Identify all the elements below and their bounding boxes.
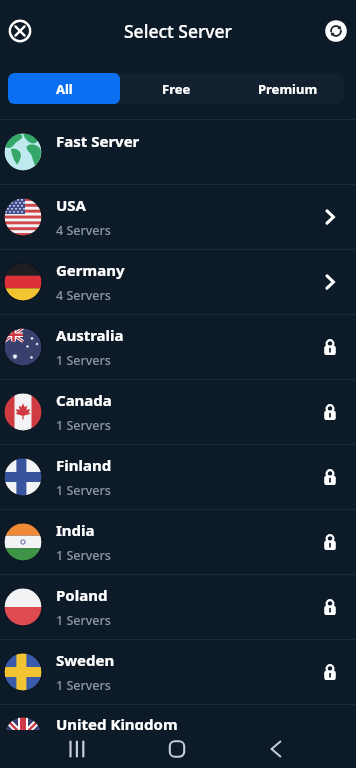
button[interactable]: India bbox=[0, 509, 356, 574]
staticText: Sweden bbox=[56, 650, 115, 670]
button[interactable]: Sweden bbox=[0, 639, 356, 704]
staticText: 4 Servers bbox=[56, 287, 111, 304]
staticText: Fast Server bbox=[56, 131, 140, 151]
staticText: 1 Servers bbox=[56, 677, 111, 694]
button[interactable]: Australia bbox=[0, 314, 356, 379]
button[interactable]: Fast Server bbox=[0, 119, 356, 184]
staticText: All bbox=[56, 80, 73, 98]
button[interactable] bbox=[155, 730, 199, 768]
button[interactable]: Free bbox=[120, 73, 232, 104]
staticText: Germany bbox=[56, 260, 125, 280]
button[interactable]: All bbox=[8, 73, 120, 104]
staticText: Premium bbox=[258, 80, 318, 98]
staticText: 1 Servers bbox=[56, 741, 111, 758]
staticText: 4 Servers bbox=[56, 222, 111, 239]
button[interactable]: Canada bbox=[0, 379, 356, 444]
button[interactable]: USA bbox=[0, 184, 356, 249]
button[interactable] bbox=[55, 730, 99, 768]
button[interactable]: Poland bbox=[0, 574, 356, 639]
button[interactable]: United Kingdom bbox=[0, 704, 356, 768]
staticText: 1 Servers bbox=[56, 547, 111, 564]
staticText: Finland bbox=[56, 455, 112, 475]
staticText: Select Server bbox=[124, 19, 233, 43]
button[interactable]: Finland bbox=[0, 444, 356, 509]
button[interactable] bbox=[254, 730, 298, 768]
staticText: Canada bbox=[56, 390, 112, 410]
staticText: Poland bbox=[56, 585, 108, 605]
staticText: 1 Servers bbox=[56, 352, 111, 369]
button[interactable] bbox=[316, 11, 356, 51]
staticText: Australia bbox=[56, 325, 124, 345]
staticText: Free bbox=[162, 80, 191, 98]
staticText: United Kingdom bbox=[56, 714, 178, 734]
staticText: 1 Servers bbox=[56, 417, 111, 434]
staticText: 1 Servers bbox=[56, 612, 111, 629]
button[interactable]: Premium bbox=[232, 73, 344, 104]
staticText: USA bbox=[56, 195, 86, 215]
staticText: 1 Servers bbox=[56, 482, 111, 499]
button[interactable]: Germany bbox=[0, 249, 356, 314]
staticText: India bbox=[56, 520, 95, 540]
button[interactable] bbox=[0, 11, 40, 51]
